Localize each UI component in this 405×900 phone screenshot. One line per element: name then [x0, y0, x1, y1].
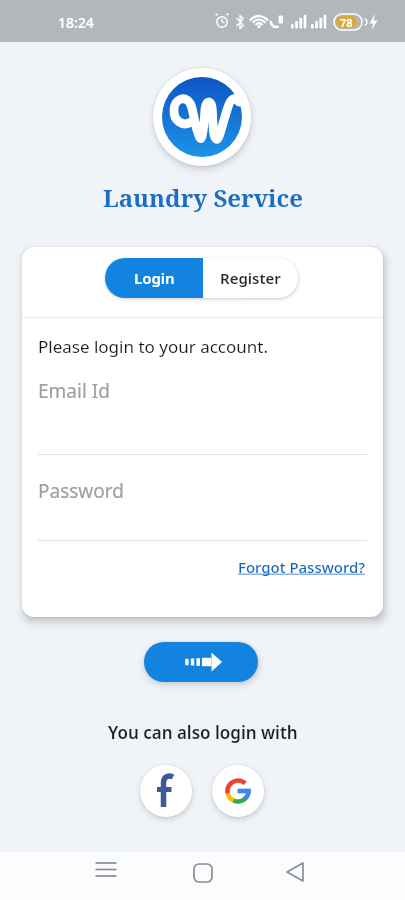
button[interactable]: Login [105, 258, 203, 298]
staticText: 78 [340, 15, 353, 30]
staticText: Login [134, 268, 175, 288]
staticText: Password [38, 478, 124, 504]
button[interactable] [86, 852, 126, 900]
button[interactable] [144, 642, 258, 682]
staticText: Email Id [38, 378, 110, 404]
button[interactable]: Forgot Password? [238, 557, 366, 577]
staticText: You can also login with [108, 721, 298, 744]
button[interactable] [183, 852, 223, 900]
button[interactable] [275, 852, 315, 900]
staticText: Register [220, 268, 281, 288]
staticText: 18:24 [58, 13, 94, 32]
staticText: Please login to your account. [38, 335, 268, 358]
button[interactable] [140, 765, 192, 817]
button[interactable]: Register [203, 258, 298, 298]
button[interactable] [212, 765, 264, 817]
button[interactable]: Email Id [38, 375, 367, 455]
button[interactable]: Password [38, 475, 367, 541]
staticText: Laundry Service [103, 181, 303, 214]
